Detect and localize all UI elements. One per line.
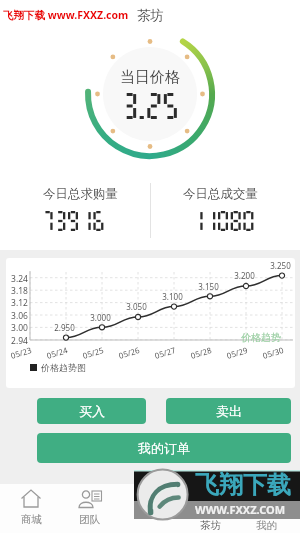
- staticText: 今日总求购量: [43, 186, 118, 201]
- staticText: 3.12: [11, 297, 28, 307]
- button[interactable]: [238, 484, 296, 533]
- staticText: 我的订单: [138, 440, 190, 456]
- staticText: 价格趋势图: [41, 362, 86, 373]
- staticText: 今日总成交量: [183, 186, 258, 201]
- staticText: 价格趋势: [241, 331, 281, 344]
- staticText: 05/27: [153, 344, 177, 361]
- staticText: 团队: [79, 513, 100, 525]
- staticText: 05/24: [45, 344, 69, 361]
- staticText: 3.200: [234, 270, 255, 281]
- button[interactable]: 买入: [37, 398, 146, 424]
- staticText: 05/29: [225, 344, 249, 361]
- staticText: 2.950: [54, 322, 75, 333]
- button[interactable]: [61, 484, 119, 533]
- staticText: 茶坊: [200, 519, 221, 531]
- staticText: 商城: [21, 513, 42, 525]
- staticText: 飞翔下载 www.FXXZ.com: [3, 8, 129, 22]
- staticText: 3.150: [198, 281, 219, 292]
- staticText: 买入: [79, 403, 105, 419]
- staticText: 2.94: [11, 335, 28, 345]
- staticText: 茶坊: [137, 7, 164, 24]
- staticText: 3.250: [270, 260, 291, 271]
- staticText: 3.000: [90, 312, 111, 323]
- staticText: 3.06: [11, 310, 28, 320]
- staticText: 卖出: [216, 403, 242, 419]
- staticText: 3.050: [126, 301, 147, 312]
- button[interactable]: 卖出: [166, 398, 291, 424]
- staticText: 05/25: [81, 344, 105, 361]
- staticText: 05/23: [9, 344, 33, 361]
- staticText: 3.18: [11, 285, 28, 295]
- staticText: 我的: [256, 519, 277, 531]
- button[interactable]: [179, 484, 237, 533]
- staticText: WWW.FXXZ.COM: [195, 502, 286, 517]
- staticText: 05/30: [261, 344, 285, 361]
- staticText: 当日价格: [120, 68, 180, 84]
- staticText: 飞翔下载: [195, 470, 291, 500]
- staticText: 3.100: [162, 291, 183, 302]
- staticText: 05/28: [189, 344, 213, 361]
- button[interactable]: [2, 484, 60, 533]
- staticText: 3.24: [11, 273, 28, 283]
- staticText: 3.00: [11, 322, 28, 332]
- button[interactable]: [120, 484, 178, 533]
- staticText: 05/26: [117, 344, 141, 361]
- button[interactable]: 我的订单: [37, 433, 291, 463]
